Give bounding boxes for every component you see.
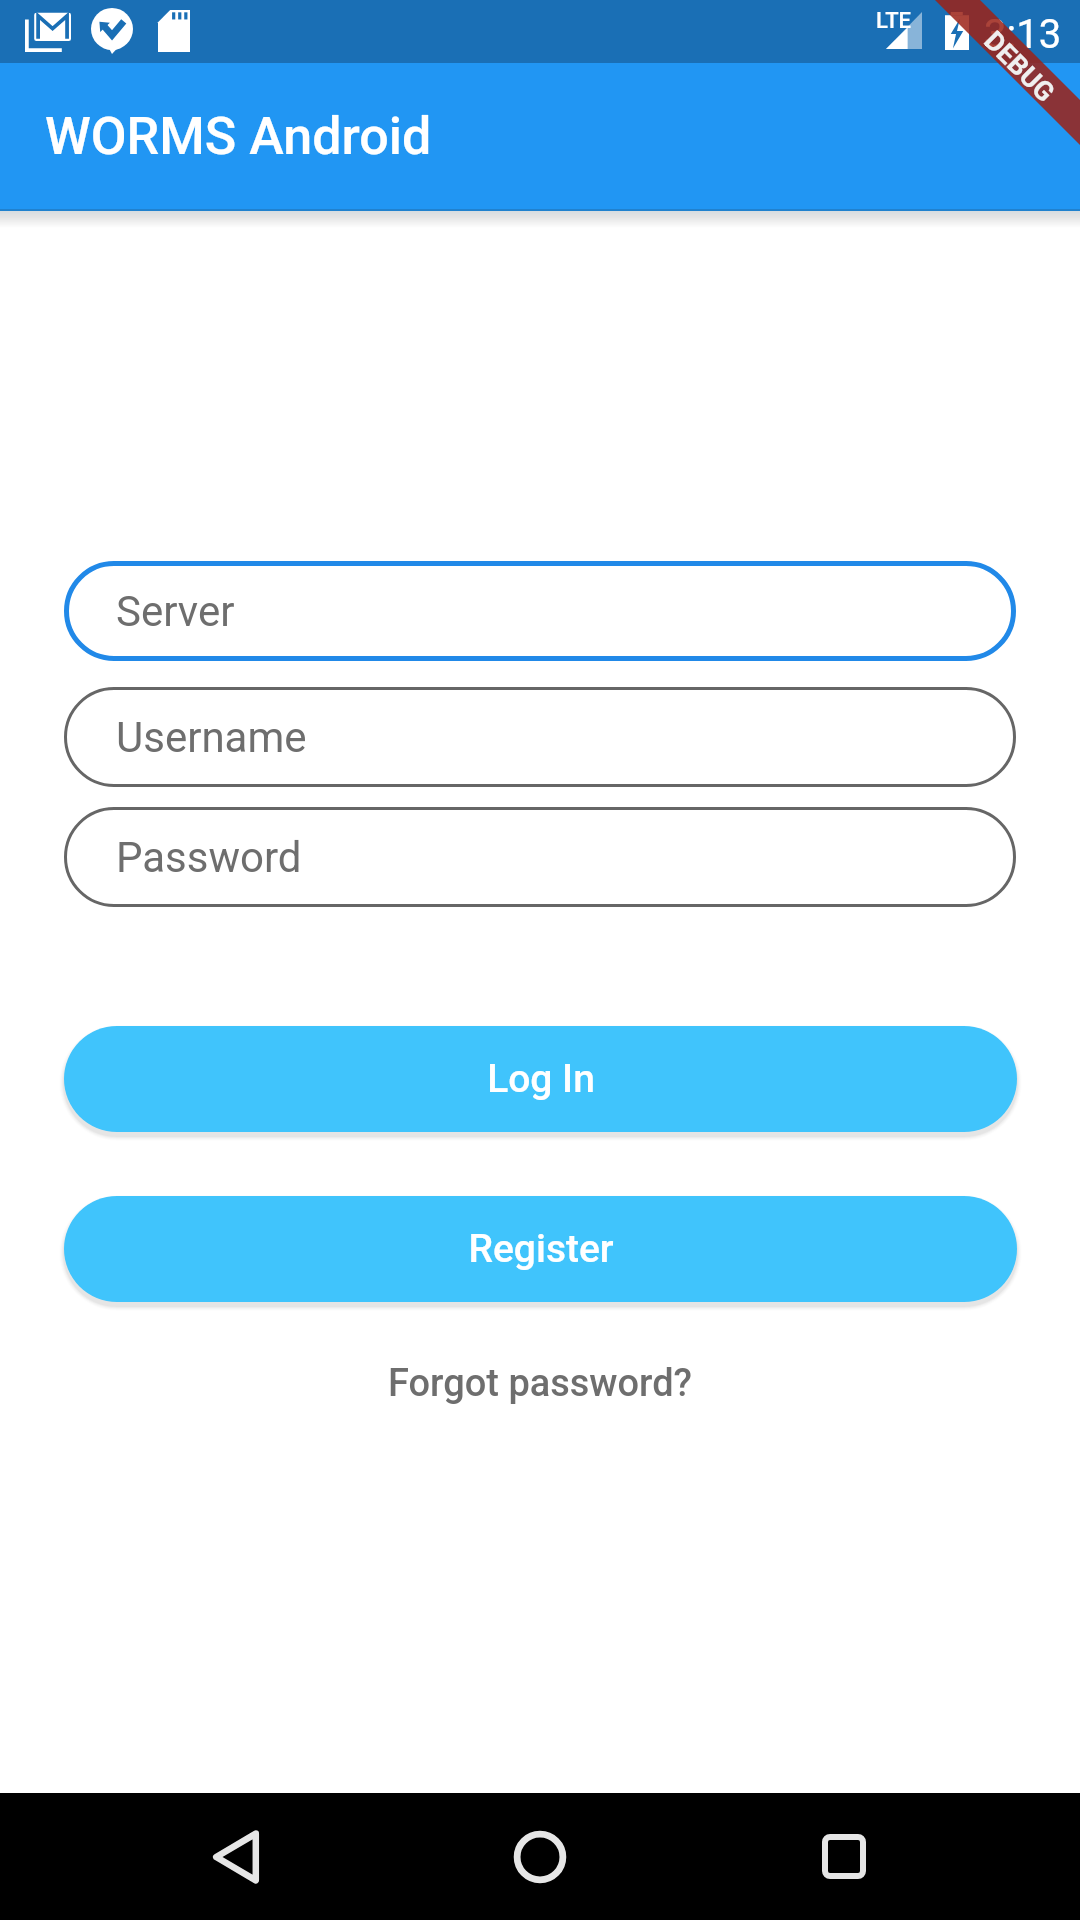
button[interactable]: Username [64,687,1016,787]
button[interactable]: Register [64,1196,1017,1302]
staticText: DEBUG [977,25,1061,109]
button[interactable]: Log In [64,1026,1017,1132]
button[interactable]: Password [64,807,1016,907]
button[interactable]: Home [460,1793,620,1920]
staticText: Forgot password? [388,1361,693,1406]
button[interactable]: Forgot password? [374,1353,707,1414]
staticText: Register [468,1226,614,1272]
button[interactable]: Server [64,561,1016,661]
staticText: Server [116,587,235,636]
staticText: WORMS Android [45,106,432,167]
staticText: 3:13 [984,11,1062,58]
button[interactable]: Back [156,1793,316,1920]
staticText: Log In [487,1056,595,1102]
button[interactable]: Recent apps [764,1793,924,1920]
staticText: Password [116,833,302,882]
staticText: LTE [876,8,912,34]
staticText: Username [116,713,307,762]
